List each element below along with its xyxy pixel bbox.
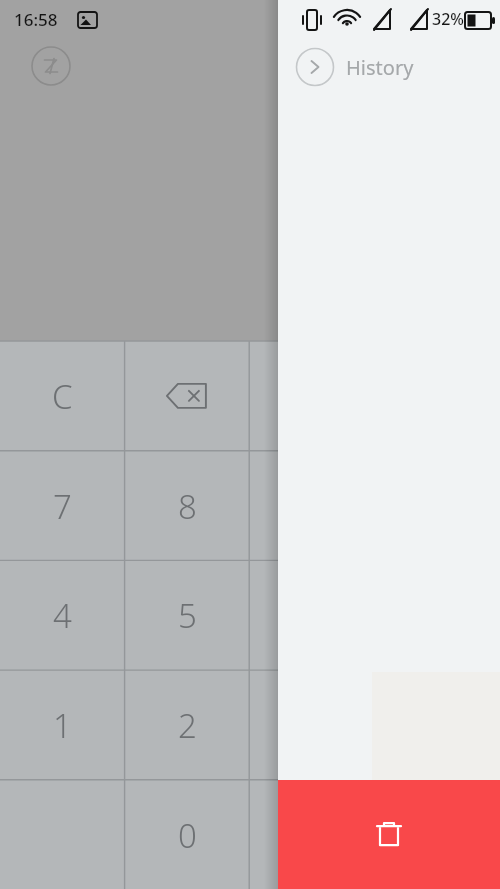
button[interactable]: 1 [0,670,125,780]
staticText: 4 [53,593,72,638]
button[interactable]: C [0,341,125,451]
staticText: 0 [178,813,197,858]
button[interactable]: 4 [0,560,125,670]
button[interactable]: 0 [125,780,250,889]
button[interactable]: 5 [125,560,250,670]
staticText: 8 [178,484,197,529]
button[interactable]: Scientific mode [31,46,71,86]
staticText: 1 [53,703,72,748]
staticText: 32% [432,8,464,30]
staticText: 7 [53,484,72,529]
button[interactable]: 7 [0,451,125,561]
staticText: History [346,54,414,81]
button[interactable]: 8 [125,451,250,561]
button[interactable]: History [295,47,445,87]
button[interactable]: Clear history [278,780,500,889]
staticText: 16:58 [14,8,58,31]
staticText: 5 [178,593,197,638]
button[interactable]: 2 [125,670,250,780]
staticText: 2 [178,703,197,748]
staticText: C [52,374,73,419]
